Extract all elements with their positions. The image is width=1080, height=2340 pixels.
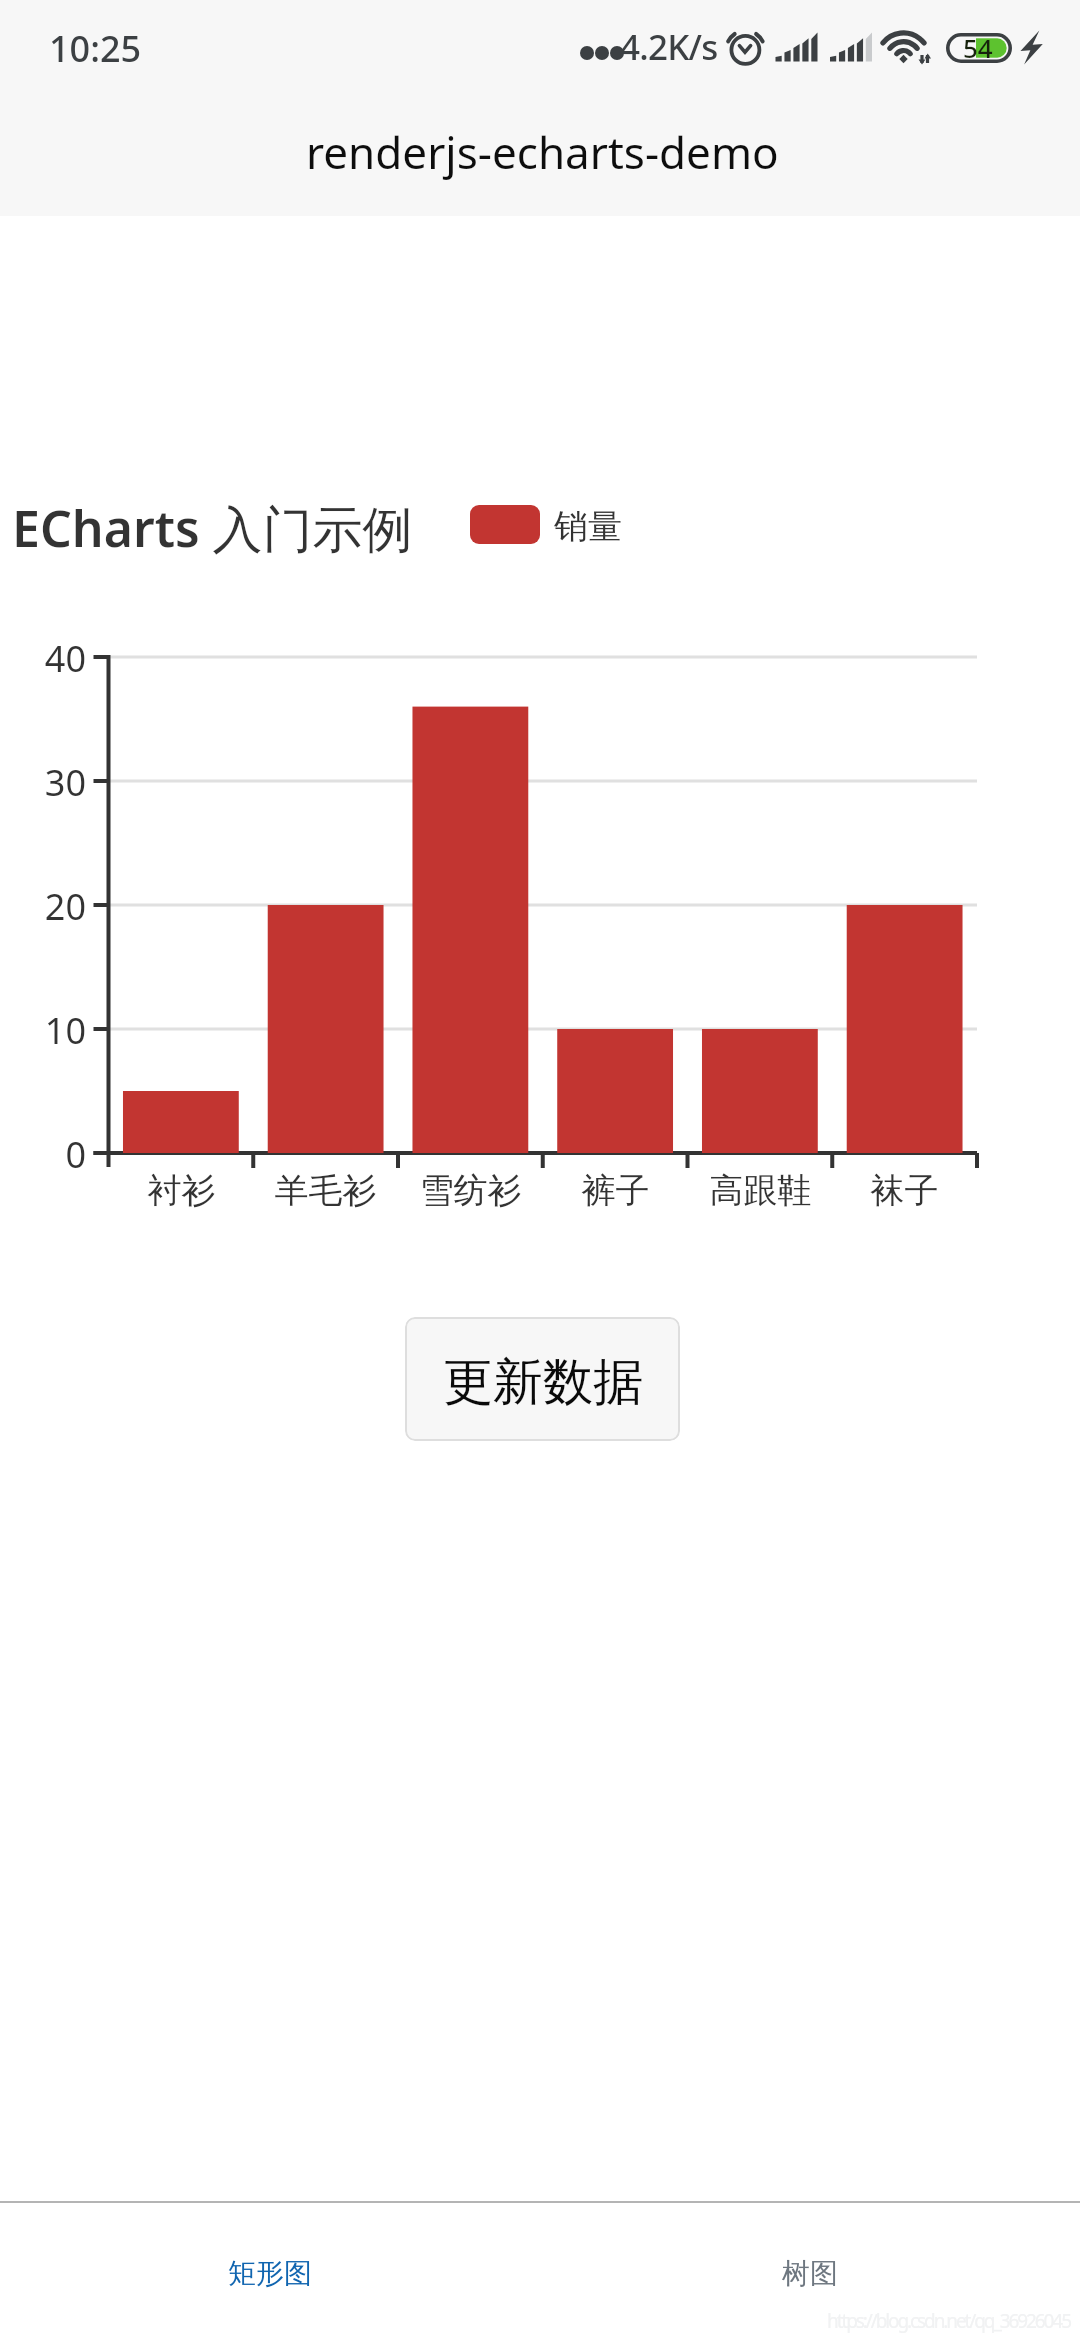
staticText: 裤子: [543, 1169, 688, 1212]
button[interactable]: 树图: [540, 2203, 1080, 2340]
staticText: 高跟鞋: [688, 1169, 833, 1212]
other: 销量 series colour: [470, 505, 540, 544]
staticText: https://blog.csdn.net/qq_36926045: [827, 2308, 1070, 2334]
staticText: 矩形图: [228, 2256, 312, 2291]
staticText: 0: [0, 1130, 86, 1179]
staticText: 树图: [782, 2256, 838, 2291]
button[interactable]: 销量 series colour: [470, 507, 622, 550]
staticText: 雪纺衫: [398, 1169, 543, 1212]
staticText: 10:25: [49, 24, 142, 73]
staticText: renderjs-echarts-demo: [306, 122, 779, 182]
staticText: 销量: [554, 505, 622, 548]
staticText: 4.2K/s: [620, 23, 718, 71]
staticText: 羊毛衫: [253, 1169, 398, 1212]
staticText: 袜子: [832, 1169, 977, 1212]
staticText: ECharts 入门示例: [12, 494, 413, 562]
staticText: 40: [0, 634, 86, 683]
staticText: 10: [0, 1006, 86, 1055]
button[interactable]: 矩形图: [0, 2203, 540, 2340]
staticText: 54: [963, 30, 993, 60]
staticText: 更新数据: [443, 1351, 643, 1414]
button[interactable]: 更新数据: [405, 1317, 680, 1441]
staticText: 30: [0, 758, 86, 807]
staticText: 20: [0, 882, 86, 931]
staticText: 衬衫: [109, 1169, 254, 1212]
